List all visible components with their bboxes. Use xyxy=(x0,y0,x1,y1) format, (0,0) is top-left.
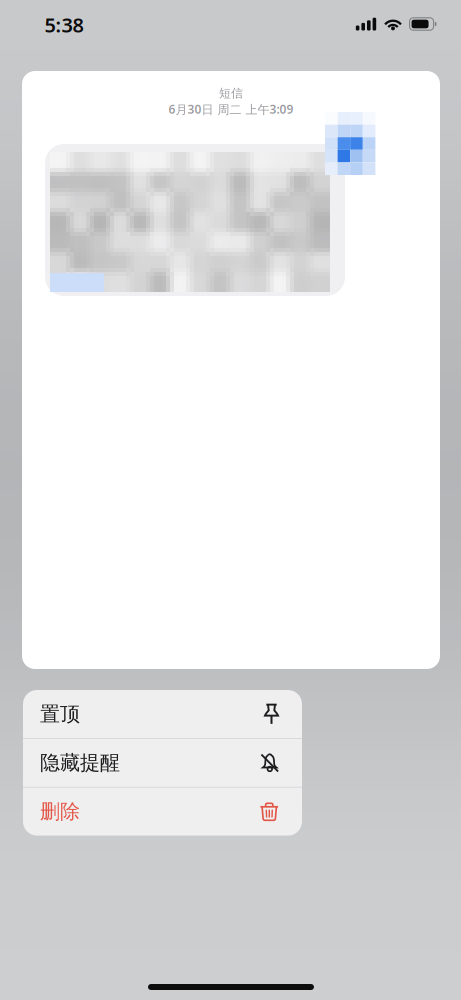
button[interactable]: 隐藏提醒 xyxy=(23,739,302,787)
staticText: 隐藏提醒 xyxy=(40,750,120,775)
staticText: 5:38 xyxy=(44,11,83,38)
staticText: 6月30日 周二 上午3:09 xyxy=(168,101,293,117)
button[interactable]: 置顶 xyxy=(23,690,302,738)
staticText: 短信 xyxy=(219,86,243,101)
button[interactable]: 删除 xyxy=(23,788,302,836)
staticText: 置顶 xyxy=(40,702,80,726)
staticText: 删除 xyxy=(40,799,80,824)
